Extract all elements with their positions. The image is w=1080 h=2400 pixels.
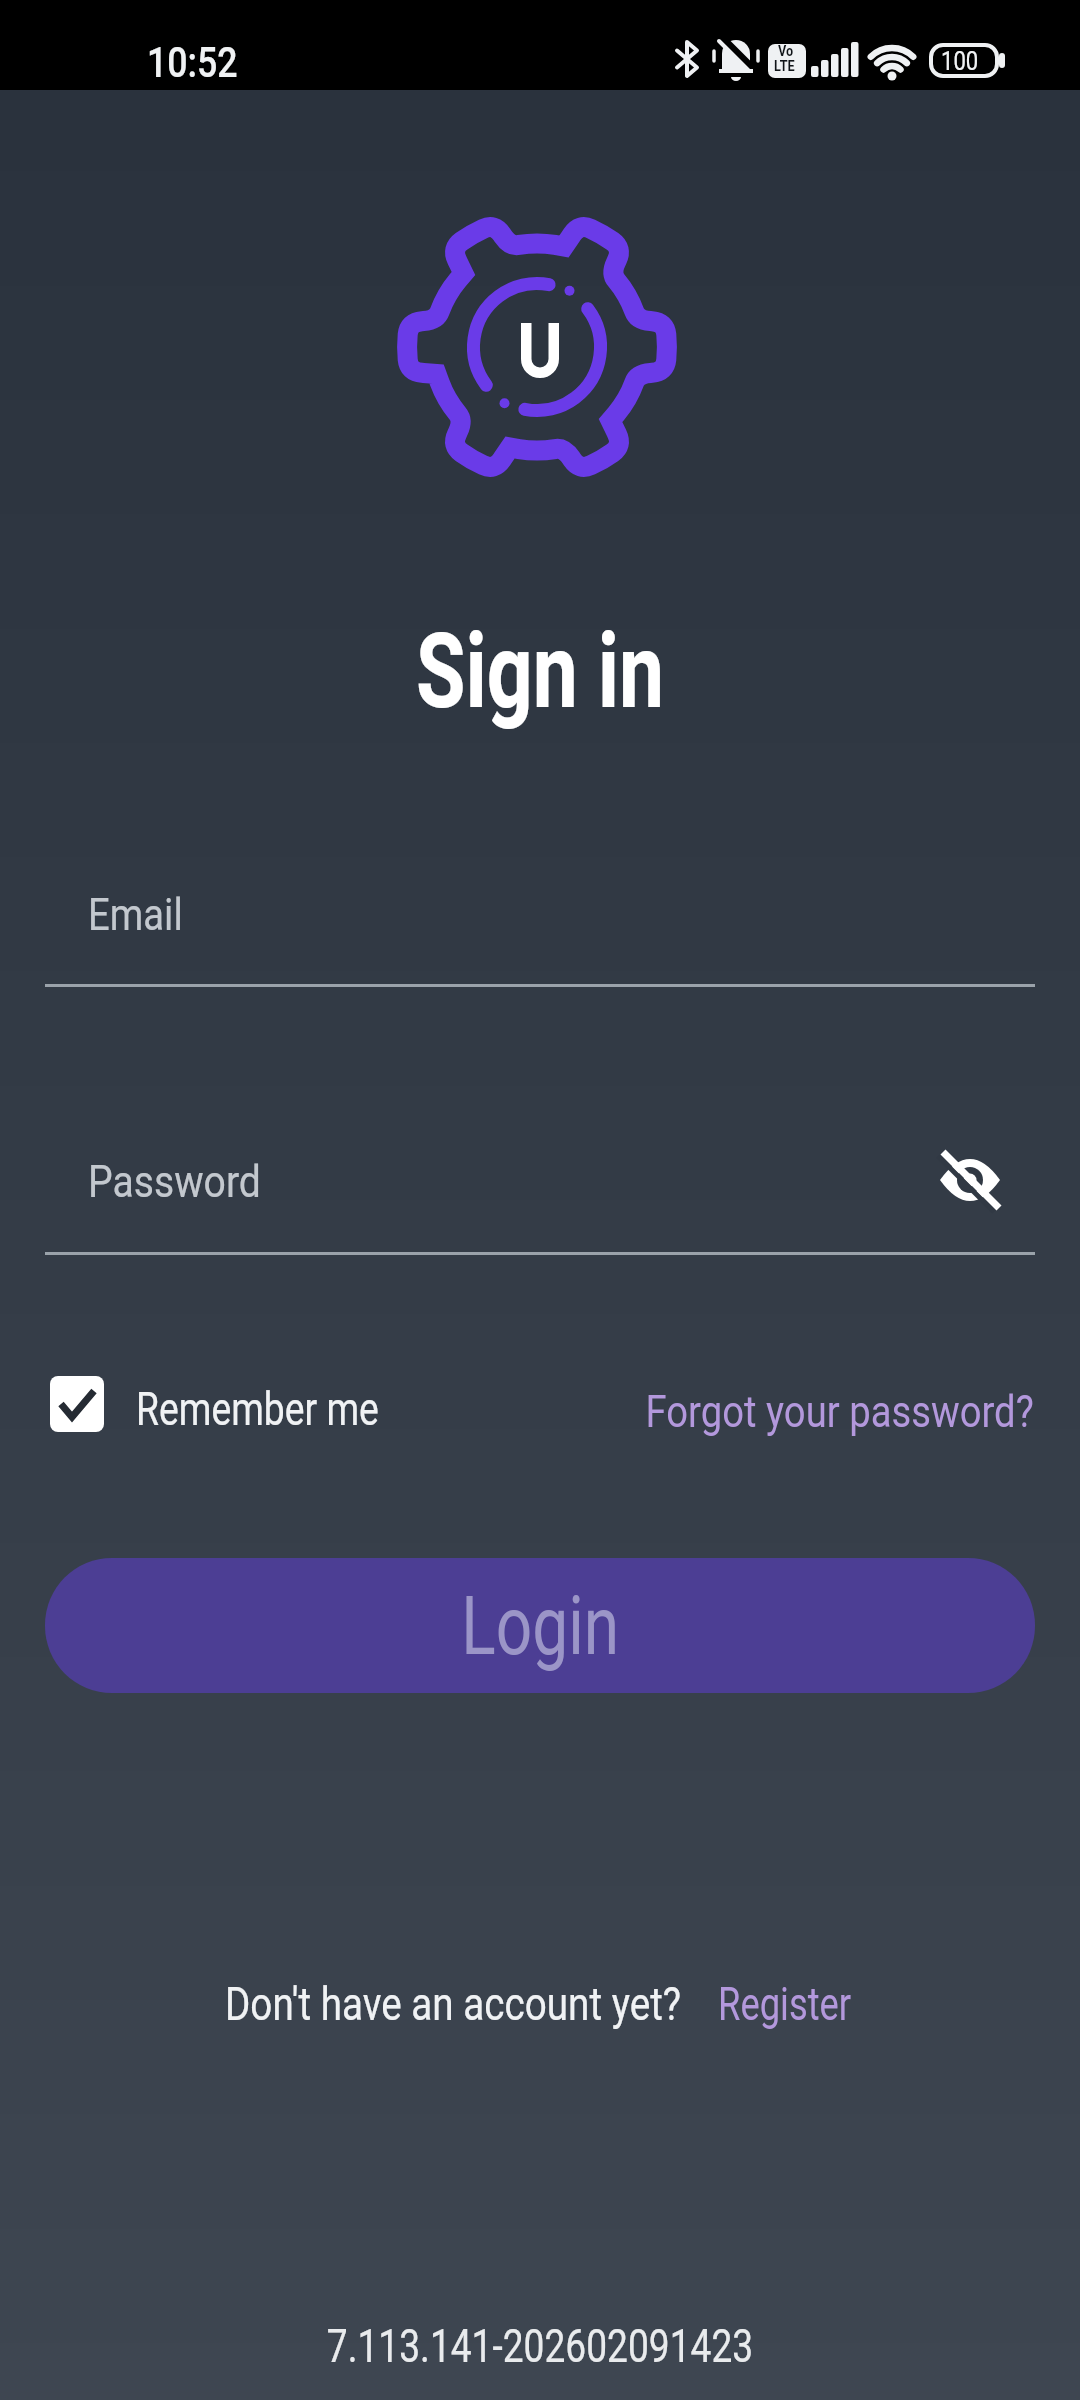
button[interactable]: Remember me	[45, 1368, 395, 1440]
staticText: 10:52	[147, 38, 238, 87]
button[interactable]: Register	[718, 1970, 948, 2032]
staticText: Sign in	[416, 611, 664, 732]
button[interactable]: Password	[45, 1123, 1035, 1255]
staticText: Register	[718, 1977, 851, 2031]
button[interactable]: Email	[45, 855, 1035, 987]
staticText: 100	[941, 46, 978, 76]
button[interactable]: Login	[45, 1558, 1035, 1693]
staticText: Don't have an account yet?	[225, 1977, 681, 2031]
staticText: Email	[88, 888, 183, 941]
staticText: Login	[461, 1578, 620, 1674]
staticText: LTE	[774, 57, 795, 75]
staticText: Remember me	[136, 1382, 379, 1436]
staticText: 7.113.141-202602091423	[327, 2318, 753, 2373]
button[interactable]: Forgot your password?	[577, 1385, 1034, 1438]
staticText: Vo	[778, 42, 793, 60]
staticText: Password	[88, 1155, 261, 1208]
button[interactable]	[915, 1135, 1025, 1225]
